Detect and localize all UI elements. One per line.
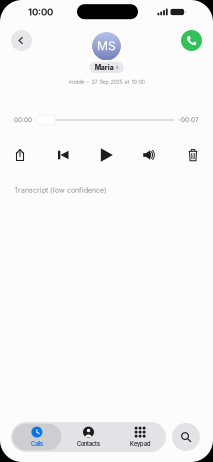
button[interactable]: Maria bbox=[89, 62, 124, 73]
button[interactable]: Contacts bbox=[63, 422, 114, 452]
staticText: 10:00 bbox=[28, 6, 53, 18]
button[interactable]: Play bbox=[92, 147, 120, 163]
button[interactable]: Search bbox=[172, 423, 200, 451]
button[interactable]: Calls bbox=[11, 422, 63, 452]
staticText: MS bbox=[97, 39, 116, 53]
staticText: Maria bbox=[95, 63, 114, 72]
button[interactable]: Delete bbox=[179, 147, 207, 163]
button[interactable]: Keypad bbox=[114, 422, 166, 452]
staticText: 00:00 bbox=[14, 116, 32, 124]
button[interactable]: Restart bbox=[49, 147, 77, 163]
staticText: Contacts bbox=[77, 441, 100, 447]
staticText: Calls bbox=[31, 441, 43, 447]
button[interactable]: Share bbox=[6, 147, 34, 163]
staticText: -00:07 bbox=[178, 116, 199, 124]
staticText: mobile – 27 Sep 2025 at 10:00 bbox=[68, 78, 144, 85]
button[interactable]: Speaker bbox=[136, 147, 164, 163]
staticText: Keypad bbox=[130, 441, 150, 447]
button[interactable]: Call bbox=[181, 30, 202, 51]
button[interactable]: Back bbox=[11, 30, 32, 51]
staticText: Transcript (low confidence) bbox=[14, 186, 107, 194]
